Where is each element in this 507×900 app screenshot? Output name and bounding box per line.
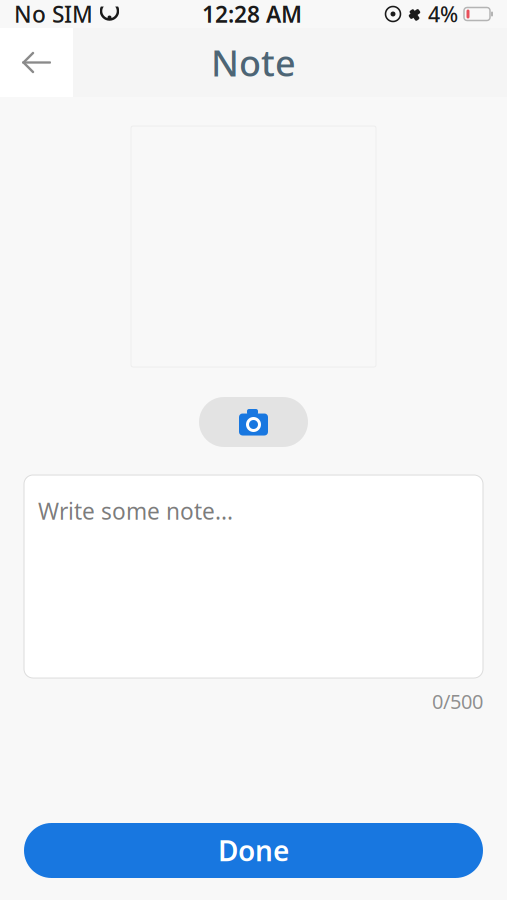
button[interactable]: Back (0, 28, 73, 97)
staticText: 4% (428, 0, 458, 28)
staticText: Done (218, 832, 289, 869)
button[interactable]: Write some note... (24, 475, 483, 678)
staticText: No SIM (14, 0, 93, 29)
staticText: Write some note... (38, 496, 233, 526)
button[interactable]: Take photo (199, 397, 308, 447)
staticText: 0/500 (432, 688, 483, 715)
staticText: 12:28 AM (202, 0, 302, 29)
button[interactable]: Done (24, 823, 483, 878)
staticText: Note (211, 39, 296, 86)
